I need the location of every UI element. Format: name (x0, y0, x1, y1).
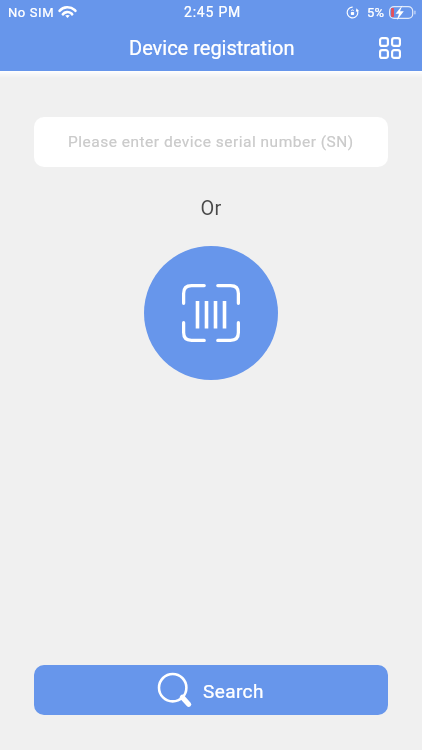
button[interactable]: Scan barcode (144, 246, 278, 380)
button[interactable]: Search (34, 665, 388, 715)
staticText: 5% (367, 5, 385, 20)
staticText: No SIM (8, 5, 55, 20)
button[interactable]: Grid menu (368, 26, 412, 70)
staticText: Search (203, 680, 264, 702)
staticText: Or (0, 196, 422, 219)
staticText: Device registration (129, 36, 295, 59)
staticText: Please enter device serial number (SN) (68, 133, 354, 151)
staticText: 2:45 PM (184, 4, 242, 20)
button[interactable]: Please enter device serial number (SN) (34, 117, 388, 167)
